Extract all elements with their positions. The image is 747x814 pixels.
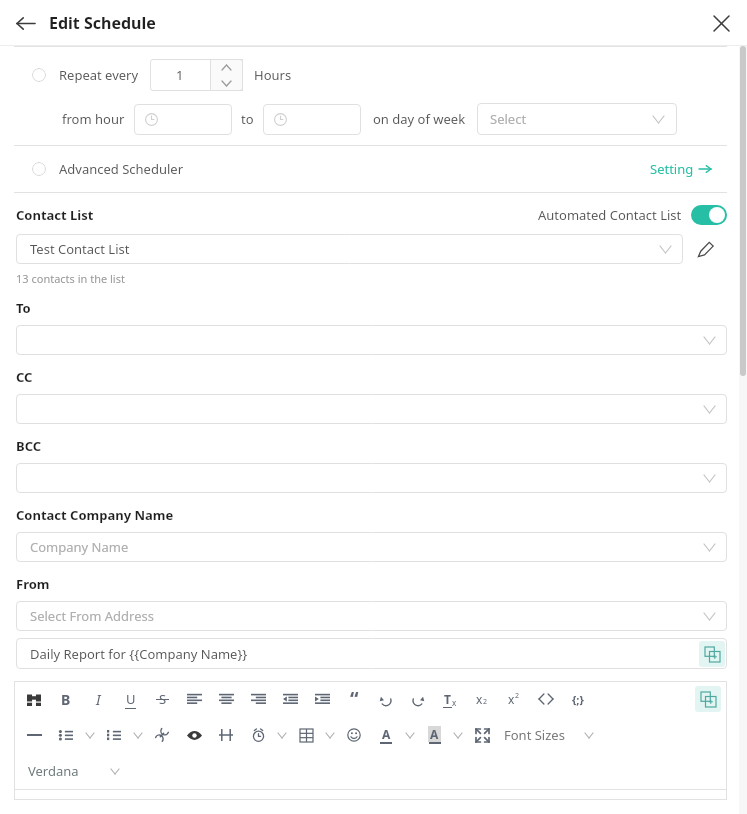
button[interactable]: Insert variable [699,641,725,667]
button[interactable]: Editor tool [178,684,210,714]
button[interactable]: Pick time [263,104,361,135]
button[interactable]: Editor tool [242,720,274,750]
staticText: T [444,691,451,707]
staticText: CC [16,368,33,386]
button[interactable]: More options [322,721,338,749]
button[interactable]: Font Sizes [504,726,565,744]
staticText: U [126,690,136,708]
button[interactable]: Editor tool [18,684,50,714]
button[interactable]: Select option [32,68,46,82]
staticText: Daily Report for {{Company Name}} [30,645,248,663]
button[interactable]: Editor tool [210,720,242,750]
staticText: Setting [650,160,694,178]
button[interactable] [16,394,727,424]
staticText: Automated Contact List [538,206,682,224]
button[interactable]: Setting [646,160,715,178]
staticText: Verdana [28,762,79,780]
button[interactable]: Pick time [134,104,232,135]
button[interactable]: Select option [32,162,46,176]
button[interactable]: Editor tool [562,684,594,714]
button[interactable]: Editor tool [466,684,498,714]
button[interactable]: Editor tool [242,684,274,714]
button[interactable] [16,325,727,355]
button[interactable]: Editor tool [338,720,370,750]
button[interactable]: Editor tool [274,684,306,714]
staticText: from hour [62,110,125,128]
staticText: A [430,726,439,742]
staticText: Contact Company Name [16,506,174,524]
staticText: From [16,575,50,593]
button[interactable]: Automated Contact List [538,205,727,225]
staticText: A [382,726,391,742]
button[interactable]: Editor tool [498,684,530,714]
button[interactable]: Editor tool [530,684,562,714]
button[interactable]: Editor tool [306,684,338,714]
staticText: 2 [483,697,488,707]
button[interactable]: Editor tool [338,684,370,714]
button[interactable]: Back [10,8,40,38]
button[interactable]: Decrease [210,75,243,91]
button[interactable]: Verdana [28,757,123,785]
button[interactable]: Editor tool [418,720,450,750]
button[interactable]: Editor tool [466,720,498,750]
staticText: x [452,697,457,708]
button[interactable]: Editor tool [146,684,178,714]
staticText: Company Name [30,538,129,556]
button[interactable]: Insert variable [695,686,721,712]
button[interactable]: Select From Address [16,601,727,631]
button[interactable]: Editor tool [18,720,50,750]
button[interactable] [16,463,727,493]
button[interactable]: Close [707,9,735,37]
button[interactable]: Edit contact list [683,234,727,264]
staticText: Repeat every [59,66,139,84]
button[interactable]: More options [581,721,597,749]
staticText: 1 [176,66,184,84]
button[interactable]: Editor tool [50,720,82,750]
button[interactable]: Select option [14,146,727,192]
staticText: Advanced Scheduler [59,160,184,178]
staticText: x [476,691,483,707]
button[interactable]: Editor tool [178,720,210,750]
staticText: “ [350,686,359,712]
button[interactable]: More options [130,721,146,749]
staticText: 13 contacts in the list [16,271,125,286]
staticText: Hours [254,66,292,84]
button[interactable]: Editor tool [370,684,402,714]
button[interactable]: Company Name [16,532,727,562]
button[interactable]: Editor tool [210,684,242,714]
button[interactable]: Editor tool [50,684,82,714]
button[interactable]: Editor tool [290,720,322,750]
staticText: Test Contact List [30,240,130,258]
button[interactable]: Editor tool [98,720,130,750]
button[interactable]: More options [450,721,466,749]
staticText: x [508,691,515,707]
button[interactable]: Editor tool [114,684,146,714]
staticText: on day of week [373,110,466,128]
button[interactable]: Editor tool [370,720,402,750]
button[interactable]: More options [82,721,98,749]
staticText: to [241,110,254,128]
button[interactable]: Select [477,103,677,135]
button[interactable]: Editor tool [82,684,114,714]
button[interactable]: More options [402,721,418,749]
staticText: To [16,299,31,317]
button[interactable]: Editor tool [402,684,434,714]
staticText: S [159,690,167,708]
button[interactable]: Test Contact List [16,234,683,264]
staticText: Edit Schedule [49,12,156,34]
button[interactable]: More options [274,721,290,749]
staticText: Font Sizes [504,726,565,744]
button[interactable]: Increase [210,59,243,75]
staticText: {;} [572,692,584,707]
staticText: Select [490,110,527,128]
button[interactable]: Daily Report for {{Company Name}} [16,638,727,669]
staticText: 2 [515,691,520,701]
staticText: Contact List [16,206,94,224]
button[interactable]: Editor tool [146,720,178,750]
staticText: B [61,690,71,709]
staticText: BCC [16,437,42,455]
staticText: I [96,690,101,709]
button[interactable]: Editor tool [434,684,466,714]
staticText: Select From Address [30,607,154,625]
button[interactable]: More options [107,757,123,785]
